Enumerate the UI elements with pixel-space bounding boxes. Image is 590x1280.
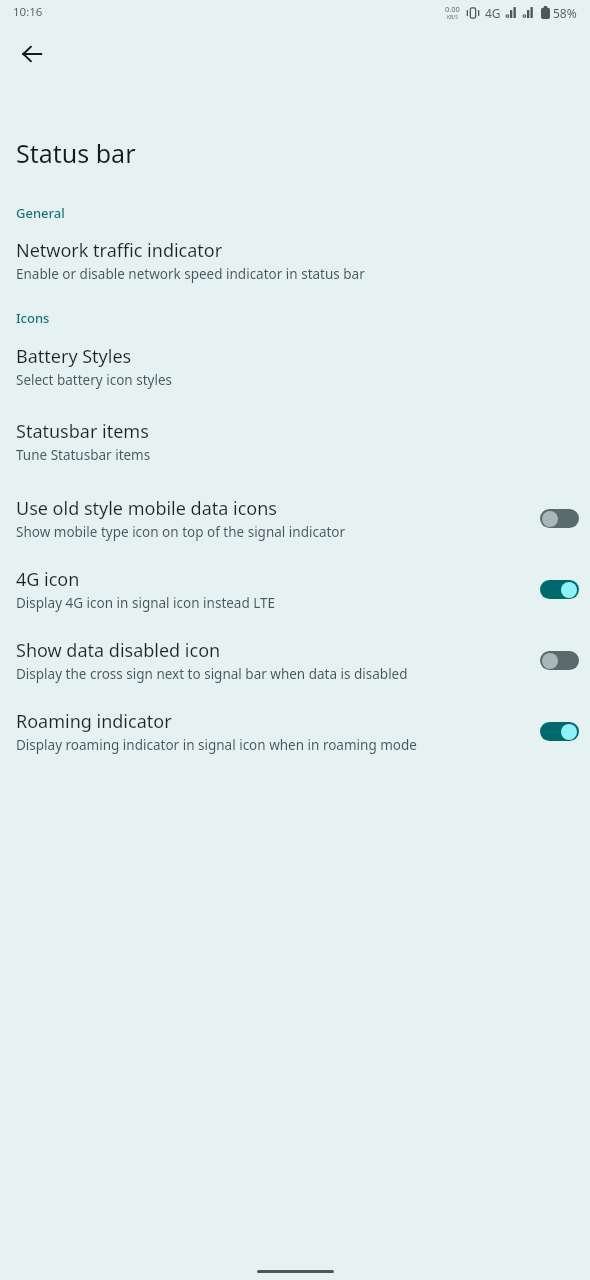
staticText: Roaming indicator (16, 709, 172, 734)
staticText: Network traffic indicator (16, 238, 223, 263)
staticText: Display roaming indicator in signal icon… (16, 736, 417, 754)
staticText: 10:16 (13, 4, 43, 20)
button[interactable]: Off (540, 509, 579, 528)
button[interactable]: 4G icon (0, 563, 590, 616)
staticText: General (16, 204, 65, 222)
staticText: Show data disabled icon (16, 638, 221, 663)
staticText: Display the cross sign next to signal ba… (16, 665, 408, 683)
button[interactable]: On (540, 722, 579, 741)
staticText: KB/S (447, 14, 458, 21)
button[interactable]: On (540, 580, 579, 599)
button[interactable]: Battery Styles (0, 340, 590, 393)
staticText: 4G icon (16, 567, 80, 592)
staticText: Enable or disable network speed indicato… (16, 265, 365, 283)
button[interactable]: Off (540, 651, 579, 670)
button[interactable]: Network traffic indicator (0, 234, 590, 287)
staticText: Statusbar items (16, 419, 149, 444)
staticText: 4G (485, 5, 501, 21)
button[interactable]: Use old style mobile data icons (0, 492, 590, 545)
staticText: 58% (553, 5, 577, 21)
staticText: Icons (16, 309, 50, 327)
button[interactable]: Back (8, 30, 56, 78)
staticText: 0.00 (445, 4, 460, 14)
staticText: Tune Statusbar items (16, 446, 151, 464)
staticText: Use old style mobile data icons (16, 496, 277, 521)
staticText: Battery Styles (16, 344, 132, 369)
button[interactable]: Roaming indicator (0, 705, 590, 758)
staticText: Status bar (16, 136, 136, 170)
staticText: Display 4G icon in signal icon instead L… (16, 594, 276, 612)
staticText: Show mobile type icon on top of the sign… (16, 523, 346, 541)
staticText: Select battery icon styles (16, 371, 172, 389)
button[interactable]: Statusbar items (0, 415, 590, 468)
button[interactable]: Show data disabled icon (0, 634, 590, 687)
